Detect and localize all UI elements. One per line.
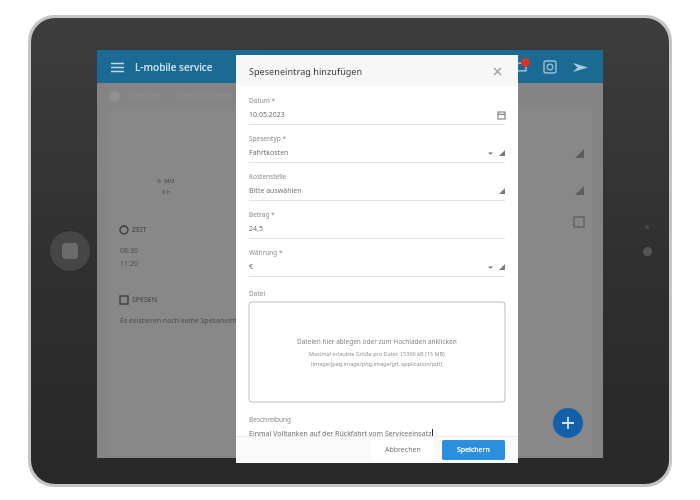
button[interactable]: DI	[224, 167, 339, 205]
staticText: (image/jpeg,image/png,image/gif, applica…	[311, 360, 443, 367]
button[interactable]: Notifications	[509, 56, 531, 78]
staticText: 08:30	[120, 246, 138, 256]
button[interactable]: Send	[569, 56, 591, 78]
button[interactable]: Back	[109, 91, 120, 102]
staticText: MO	[164, 177, 175, 185]
staticText: Fahrtkosten	[249, 148, 289, 158]
staticText: Beschreibung	[249, 415, 292, 424]
staticText: Speseneintrag hinzufügen	[249, 65, 363, 77]
staticText: Bitte auswählen	[249, 186, 302, 196]
button[interactable]: Time	[539, 56, 561, 78]
staticText: 11:20	[120, 259, 138, 269]
button[interactable]: Datum *	[249, 96, 505, 134]
staticText: Betrag *	[249, 210, 275, 219]
staticText: ZEIT	[132, 225, 147, 235]
staticText: DI	[282, 177, 289, 185]
button[interactable]: Add expense	[553, 408, 583, 438]
staticText: Abbrechen	[385, 445, 421, 455]
staticText: SPESEN	[132, 295, 158, 305]
staticText: Datum *	[249, 96, 276, 105]
staticText: Speichern	[457, 445, 490, 455]
staticText: Kostenstelle	[249, 172, 287, 181]
button[interactable]: Menu	[107, 57, 127, 77]
button[interactable]: Home	[50, 231, 90, 271]
staticText: 10.05.2023	[249, 110, 285, 120]
button[interactable]: Kostenstelle	[249, 172, 505, 210]
button[interactable]: Close	[489, 63, 505, 79]
button[interactable]: Währung *	[249, 248, 505, 286]
button[interactable]: Spesentyp *	[249, 134, 505, 172]
button[interactable]: MI	[339, 167, 454, 205]
button[interactable]: Abbrechen	[371, 440, 434, 460]
staticText: Maximal erlaubte Größe pro Datei: 15360 …	[309, 350, 445, 357]
staticText: 24,5	[249, 224, 263, 234]
staticText: €	[249, 262, 254, 272]
button[interactable]: Betrag *	[249, 210, 505, 248]
staticText: 8 h	[162, 188, 171, 196]
staticText: Datei	[249, 289, 266, 298]
button[interactable]: MO	[108, 167, 224, 205]
staticText: Einmal Volltanken auf der Rückfahrt vom …	[249, 429, 432, 436]
staticText: Es existieren noch keine Spesaneinträge.	[120, 316, 254, 326]
staticText: Dateien hier ablegen oder zum Hochladen …	[297, 337, 457, 346]
button[interactable]: Dateien hier ablegen oder zum Hochladen …	[249, 302, 505, 402]
staticText: 9 h	[277, 188, 286, 196]
button[interactable]: Speichern	[442, 440, 505, 460]
staticText: Spesentyp *	[249, 134, 286, 143]
staticText: Währung *	[249, 248, 283, 257]
staticText: L-mobile service	[135, 60, 213, 74]
